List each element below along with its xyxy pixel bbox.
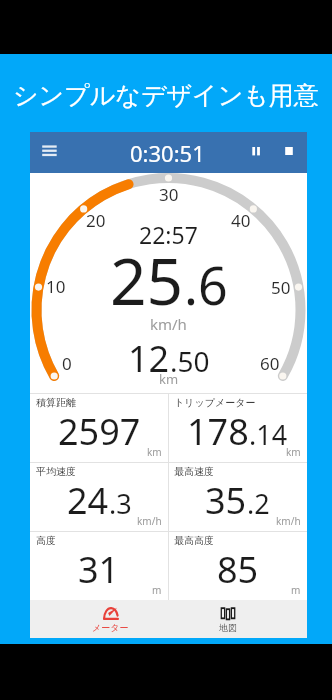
staticText: 最高速度 — [174, 465, 214, 478]
staticText: km — [147, 445, 162, 459]
staticText: 40 — [231, 209, 251, 230]
button[interactable]: 地図 — [199, 600, 257, 638]
staticText: m — [152, 583, 162, 597]
staticText: 25 — [110, 237, 184, 324]
staticText: 31 — [78, 545, 120, 594]
staticText: 22:57 — [139, 219, 198, 250]
button[interactable]: 高度 — [30, 531, 168, 600]
staticText: 平均速度 — [36, 465, 76, 478]
button[interactable]: 最高速度 — [168, 462, 307, 531]
staticText: メーター — [92, 622, 129, 633]
button[interactable]: Stop — [275, 140, 301, 164]
staticText: トリップメーター — [174, 396, 256, 409]
staticText: 高度 — [36, 534, 56, 547]
button[interactable]: トリップメーター — [168, 393, 307, 462]
button[interactable]: メーター — [81, 600, 139, 638]
button[interactable]: Menu — [38, 141, 60, 163]
staticText: 60 — [260, 352, 280, 373]
staticText: 12 — [128, 334, 170, 383]
staticText: 地図 — [219, 622, 237, 633]
staticText: 178 — [187, 407, 249, 456]
staticText: シンプルなデザインも用意 — [13, 80, 319, 111]
staticText: 50 — [271, 276, 291, 297]
staticText: km — [159, 370, 179, 388]
staticText: 20 — [86, 209, 106, 230]
staticText: .6 — [184, 249, 228, 320]
staticText: .14 — [249, 416, 288, 453]
staticText: 30 — [159, 183, 179, 204]
staticText: 0 — [62, 352, 72, 373]
staticText: 最高高度 — [174, 534, 214, 547]
staticText: 2597 — [58, 407, 141, 456]
staticText: 10 — [46, 275, 66, 296]
staticText: km/h — [150, 314, 187, 334]
staticText: 35 — [205, 476, 247, 525]
button[interactable]: 最高高度 — [168, 531, 307, 600]
staticText: 0:30:51 — [130, 138, 205, 168]
staticText: 85 — [217, 545, 259, 594]
staticText: 24 — [67, 476, 109, 525]
button[interactable]: 積算距離 — [30, 393, 168, 462]
staticText: km — [286, 445, 301, 459]
button[interactable]: Pause — [242, 140, 268, 164]
button[interactable]: 平均速度 — [30, 462, 168, 531]
staticText: m — [291, 583, 301, 597]
staticText: km/h — [137, 514, 162, 528]
staticText: km/h — [276, 514, 301, 528]
staticText: .50 — [170, 342, 210, 380]
staticText: 積算距離 — [36, 396, 76, 409]
staticText: .3 — [109, 485, 132, 522]
staticText: .2 — [247, 485, 270, 522]
